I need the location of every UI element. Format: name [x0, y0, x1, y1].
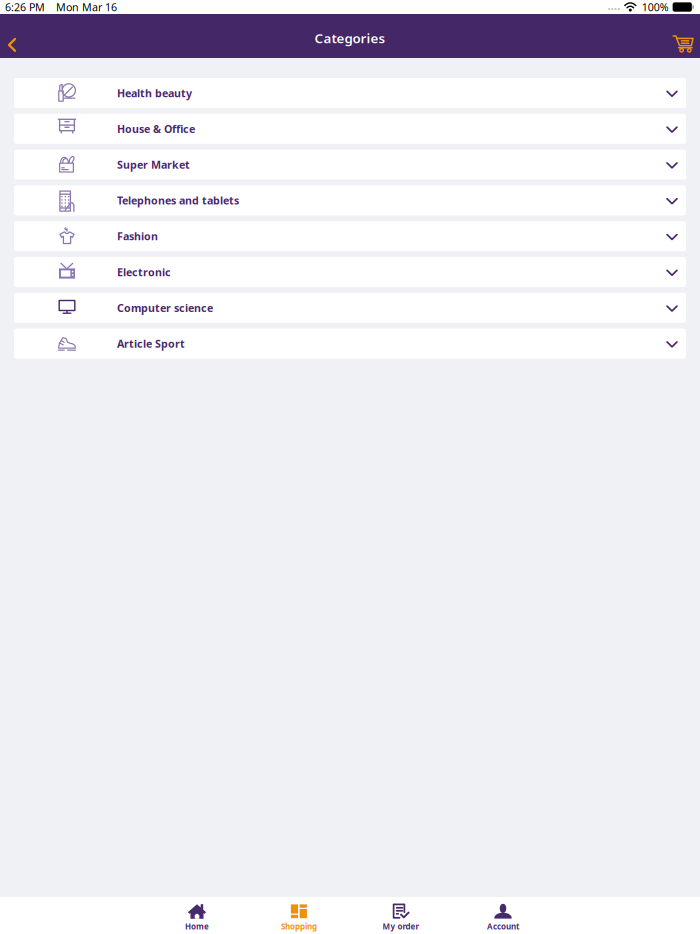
staticText: Telephones and tablets: [117, 193, 239, 207]
button[interactable]: House & Office: [14, 114, 686, 144]
staticText: Account: [487, 921, 519, 932]
button[interactable]: Fashion: [14, 221, 686, 251]
button[interactable]: Health beauty: [14, 78, 686, 108]
staticText: 6:26 PM: [5, 0, 45, 14]
staticText: Super Market: [117, 157, 190, 172]
staticText: 100%: [642, 0, 669, 14]
staticText: Electronic: [117, 265, 171, 279]
staticText: Home: [185, 921, 209, 932]
button[interactable]: Computer science: [14, 293, 686, 323]
staticText: Shopping: [281, 921, 317, 932]
staticText: Health beauty: [117, 86, 192, 100]
staticText: My order: [382, 921, 419, 932]
staticText: Mon Mar 16: [56, 0, 117, 14]
staticText: Fashion: [117, 229, 158, 243]
button[interactable]: Super Market: [14, 150, 686, 180]
button[interactable]: Home: [146, 897, 248, 934]
button[interactable]: Back: [0, 14, 33, 58]
button[interactable]: My order: [350, 897, 452, 934]
button[interactable]: Shopping: [248, 897, 350, 934]
button[interactable]: Article Sport: [14, 329, 686, 359]
staticText: Categories: [314, 29, 385, 47]
button[interactable]: Electronic: [14, 257, 686, 287]
button[interactable]: Telephones and tablets: [14, 185, 686, 215]
button[interactable]: Shopping cart: [657, 14, 700, 58]
button[interactable]: Account: [452, 897, 554, 934]
staticText: Article Sport: [117, 336, 185, 351]
staticText: Computer science: [117, 301, 213, 315]
staticText: House & Office: [117, 122, 195, 136]
